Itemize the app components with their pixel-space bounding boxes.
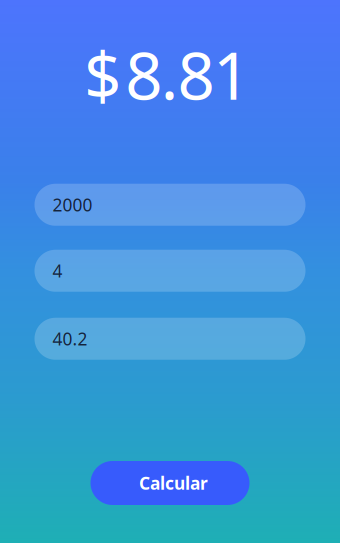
button[interactable]: 4 [34,250,305,292]
staticText: 4 [52,259,62,282]
staticText: 2000 [52,193,92,216]
staticText: $ 8.81 [84,31,250,118]
staticText: 40.2 [52,327,87,350]
staticText: Calcular [139,471,208,494]
button[interactable]: 40.2 [34,318,305,360]
button[interactable]: Calcular [90,461,249,505]
button[interactable]: 2000 [34,184,305,226]
